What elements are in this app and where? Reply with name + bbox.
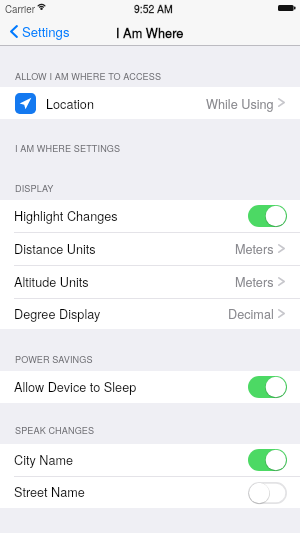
staticText: DISPLAY: [15, 182, 54, 195]
button[interactable]: Location: [0, 87, 300, 119]
staticText: Decimal: [228, 304, 274, 322]
staticText: City Name: [14, 450, 74, 468]
staticText: 9:52 AM: [134, 1, 173, 16]
staticText: Altitude Units: [14, 272, 89, 290]
staticText: Meters: [235, 239, 274, 257]
staticText: Allow Device to Sleep: [14, 377, 137, 395]
staticText: Degree Display: [14, 304, 101, 322]
staticText: I Am Where: [116, 23, 184, 41]
button[interactable]: On: [248, 449, 287, 471]
staticText: I AM WHERE SETTINGS: [15, 142, 121, 155]
staticText: Street Name: [14, 482, 85, 500]
other: Open: [278, 309, 285, 318]
button[interactable]: Highlight Changes: [0, 200, 300, 232]
other: Open: [278, 277, 285, 286]
button[interactable]: Degree Display: [0, 299, 300, 329]
other: Open: [278, 98, 285, 107]
staticText: SPEAK CHANGES: [15, 424, 95, 437]
staticText: Settings: [22, 22, 70, 41]
button[interactable]: Allow Device to Sleep: [0, 371, 300, 403]
button[interactable]: On: [248, 376, 287, 398]
staticText: ALLOW I AM WHERE TO ACCESS: [15, 70, 162, 83]
button[interactable]: Off: [248, 482, 287, 504]
button[interactable]: Altitude Units: [0, 266, 300, 298]
staticText: Location: [46, 94, 94, 112]
staticText: Highlight Changes: [14, 206, 118, 224]
staticText: POWER SAVINGS: [15, 353, 93, 366]
staticText: Distance Units: [14, 239, 96, 257]
staticText: Carrier: [5, 2, 35, 16]
button[interactable]: Distance Units: [0, 233, 300, 265]
button[interactable]: On: [248, 205, 287, 227]
button[interactable]: Street Name: [0, 477, 300, 508]
button[interactable]: Settings: [0, 20, 78, 46]
button[interactable]: City Name: [0, 444, 300, 476]
other: Open: [278, 244, 285, 253]
staticText: While Using: [206, 94, 274, 112]
staticText: Meters: [235, 272, 274, 290]
